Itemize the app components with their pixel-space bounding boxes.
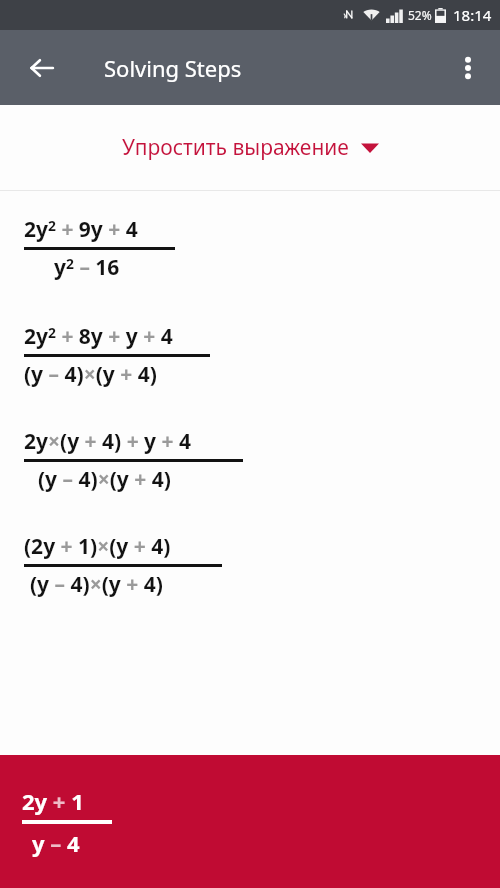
staticText: 2y×(y + 4) + y + 4 bbox=[24, 427, 192, 456]
staticText: (y – 4)×(y + 4) bbox=[30, 570, 163, 599]
button[interactable]: Back bbox=[18, 44, 66, 92]
staticText: y – 4 bbox=[32, 828, 80, 858]
staticText: y2 – 16 bbox=[54, 253, 120, 282]
staticText: 2y2 + 8y + y + 4 bbox=[24, 322, 173, 351]
staticText: 2y + 1 bbox=[22, 786, 84, 816]
button[interactable]: More options bbox=[444, 44, 492, 92]
button[interactable]: Упростить выражение bbox=[0, 105, 500, 190]
staticText: (2y + 1)×(y + 4) bbox=[24, 532, 171, 561]
staticText: 18:14 bbox=[453, 5, 492, 25]
staticText: Solving Steps bbox=[104, 53, 242, 83]
staticText: (y – 4)×(y + 4) bbox=[24, 360, 157, 389]
button[interactable]: 2y + 1 bbox=[0, 755, 500, 888]
staticText: Упростить выражение bbox=[122, 133, 349, 162]
staticText: (y – 4)×(y + 4) bbox=[38, 465, 171, 494]
staticText: 52% bbox=[408, 7, 432, 23]
staticText: 2y2 + 9y + 4 bbox=[24, 215, 138, 244]
